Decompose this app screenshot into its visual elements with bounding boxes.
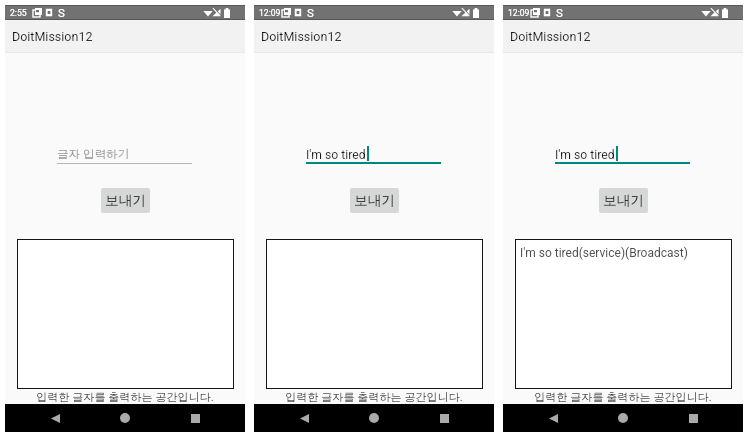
button[interactable]: Recents: [432, 404, 456, 432]
button[interactable]: Text input field: [555, 144, 690, 164]
button[interactable]: 보내기: [101, 188, 150, 213]
staticText: S: [307, 6, 314, 19]
button[interactable]: Home: [611, 404, 635, 432]
staticText: 보내기: [354, 192, 396, 209]
staticText: 보내기: [105, 192, 147, 209]
staticText: 글자 입력하기: [57, 147, 130, 162]
staticText: DoitMission12: [261, 29, 342, 44]
button[interactable]: Home: [362, 404, 386, 432]
button[interactable]: Text input field: [306, 144, 441, 164]
staticText: DoitMission12: [12, 29, 93, 44]
button[interactable]: Back: [43, 404, 67, 432]
button[interactable]: Text input field: [57, 144, 192, 164]
staticText: S: [58, 6, 65, 19]
staticText: I'm so tired: [555, 148, 615, 162]
button[interactable]: Home: [113, 404, 137, 432]
button[interactable]: Recents: [681, 404, 705, 432]
staticText: 입력한 글자를 출력하는 공간입니다.: [5, 390, 245, 404]
button[interactable]: Recents: [183, 404, 207, 432]
staticText: 12:09: [508, 8, 530, 18]
staticText: S: [556, 6, 563, 19]
staticText: 12:09: [259, 8, 281, 18]
staticText: DoitMission12: [510, 29, 591, 44]
staticText: 보내기: [603, 192, 645, 209]
staticText: I'm so tired: [306, 148, 366, 162]
staticText: I'm so tired(service)(Broadcast): [520, 246, 688, 260]
button[interactable]: 보내기: [599, 188, 648, 213]
staticText: 입력한 글자를 출력하는 공간입니다.: [503, 390, 743, 404]
staticText: 2:55: [10, 8, 27, 18]
staticText: 입력한 글자를 출력하는 공간입니다.: [254, 390, 494, 404]
button[interactable]: Back: [541, 404, 565, 432]
button[interactable]: Back: [292, 404, 316, 432]
button[interactable]: 보내기: [350, 188, 399, 213]
